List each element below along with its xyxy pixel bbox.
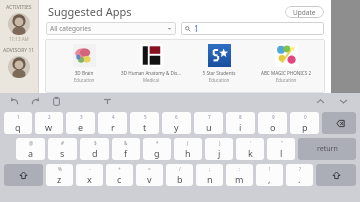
- button[interactable]: =: [136, 164, 163, 186]
- staticText: ': [250, 140, 252, 146]
- button[interactable]: :: [226, 164, 253, 186]
- staticText: ABC MAGIC PHONICS 2: [255, 70, 317, 76]
- staticText: =: [148, 166, 151, 172]
- staticText: s: [60, 147, 65, 159]
- staticText: All categories: [50, 24, 92, 33]
- button[interactable]: *: [143, 138, 171, 160]
- staticText: Education: [255, 77, 317, 83]
- staticText: k: [248, 147, 253, 159]
- staticText: 9: [272, 114, 275, 120]
- staticText: /: [179, 166, 181, 172]
- staticText: Medical: [120, 77, 182, 83]
- staticText: g: [154, 147, 160, 159]
- staticText: n: [207, 173, 213, 185]
- button[interactable]: %: [46, 164, 73, 186]
- staticText: 0: [304, 114, 307, 120]
- staticText: ;: [209, 166, 211, 172]
- staticText: Education: [188, 77, 250, 83]
- button[interactable]: Undo: [8, 95, 21, 108]
- button[interactable]: 5: [130, 112, 159, 134]
- button[interactable]: 3: [66, 112, 95, 134]
- button[interactable]: Paste: [50, 95, 63, 108]
- staticText: 3D Human Anatomy & Dise…: [120, 70, 182, 76]
- button[interactable]: 1: [4, 112, 32, 134]
- staticText: l: [280, 147, 283, 159]
- button[interactable]: Update: [285, 6, 324, 18]
- button[interactable]: Next field: [337, 95, 350, 108]
- button[interactable]: (: [174, 138, 202, 160]
- button[interactable]: Text formatting: [101, 95, 114, 108]
- button[interactable]: Shift: [4, 164, 43, 186]
- staticText: (: [187, 140, 189, 146]
- staticText: 6: [175, 114, 178, 120]
- staticText: f: [124, 147, 128, 159]
- staticText: @: [29, 140, 34, 146]
- button[interactable]: ;: [196, 164, 223, 186]
- button[interactable]: +: [106, 164, 133, 186]
- staticText: #: [61, 140, 64, 146]
- button[interactable]: 5 Star Students: [188, 44, 250, 83]
- staticText: i: [239, 121, 242, 133]
- staticText: !: [269, 166, 271, 172]
- staticText: j: [218, 147, 221, 159]
- staticText: ": [281, 140, 283, 146]
- button[interactable]: 0: [290, 112, 319, 134]
- staticText: z: [57, 173, 62, 185]
- button[interactable]: ': [236, 138, 264, 160]
- button[interactable]: return: [298, 138, 356, 160]
- button[interactable]: &: [112, 138, 140, 160]
- button[interactable]: 4: [98, 112, 127, 134]
- staticText: a: [28, 147, 34, 159]
- button[interactable]: ADVISORY 11: [0, 47, 38, 78]
- staticText: &: [124, 140, 128, 146]
- button[interactable]: Redo: [29, 95, 42, 108]
- button[interactable]: @: [16, 138, 45, 160]
- staticText: c: [117, 173, 122, 185]
- staticText: w: [45, 121, 53, 133]
- staticText: ADVISORY 11: [3, 47, 35, 54]
- button[interactable]: 3D Brain: [53, 44, 115, 83]
- button[interactable]: Backspace: [322, 112, 356, 134]
- staticText: :: [239, 166, 241, 172]
- staticText: t: [143, 121, 147, 133]
- button[interactable]: All categories: [46, 22, 176, 35]
- staticText: r: [111, 121, 115, 133]
- staticText: ?: [299, 166, 301, 172]
- staticText: Update: [293, 8, 316, 17]
- button[interactable]: #: [48, 138, 77, 160]
- button[interactable]: ): [205, 138, 233, 160]
- button[interactable]: -: [76, 164, 103, 186]
- staticText: o: [270, 121, 276, 133]
- button[interactable]: 7: [194, 112, 223, 134]
- staticText: 3D Brain: [53, 70, 115, 76]
- staticText: 5: [144, 114, 147, 120]
- button[interactable]: 9: [258, 112, 287, 134]
- button[interactable]: ABC MAGIC PHONICS 2: [255, 44, 317, 83]
- staticText: *: [156, 140, 159, 146]
- staticText: +: [118, 166, 121, 172]
- button[interactable]: 8: [226, 112, 255, 134]
- staticText: h: [185, 147, 191, 159]
- staticText: %: [58, 166, 62, 172]
- button[interactable]: ACTIVITIES: [0, 4, 38, 42]
- button[interactable]: /: [166, 164, 193, 186]
- staticText: x: [87, 173, 92, 185]
- button[interactable]: 2: [35, 112, 63, 134]
- staticText: return: [317, 144, 338, 154]
- staticText: v: [147, 173, 152, 185]
- staticText: Education: [53, 77, 115, 83]
- button[interactable]: ?: [286, 164, 313, 186]
- staticText: e: [78, 121, 84, 133]
- staticText: 4: [112, 114, 115, 120]
- button[interactable]: ": [267, 138, 295, 160]
- staticText: d: [92, 147, 98, 159]
- button[interactable]: Previous field: [314, 95, 327, 108]
- button[interactable]: !: [256, 164, 283, 186]
- button[interactable]: $: [80, 138, 109, 160]
- button[interactable]: 3D Human Anatomy & Dise…: [120, 44, 182, 83]
- staticText: -: [89, 166, 91, 172]
- button[interactable]: 6: [162, 112, 191, 134]
- button[interactable]: Shift: [316, 164, 356, 186]
- button[interactable]: 1: [181, 22, 324, 35]
- staticText: q: [15, 121, 21, 133]
